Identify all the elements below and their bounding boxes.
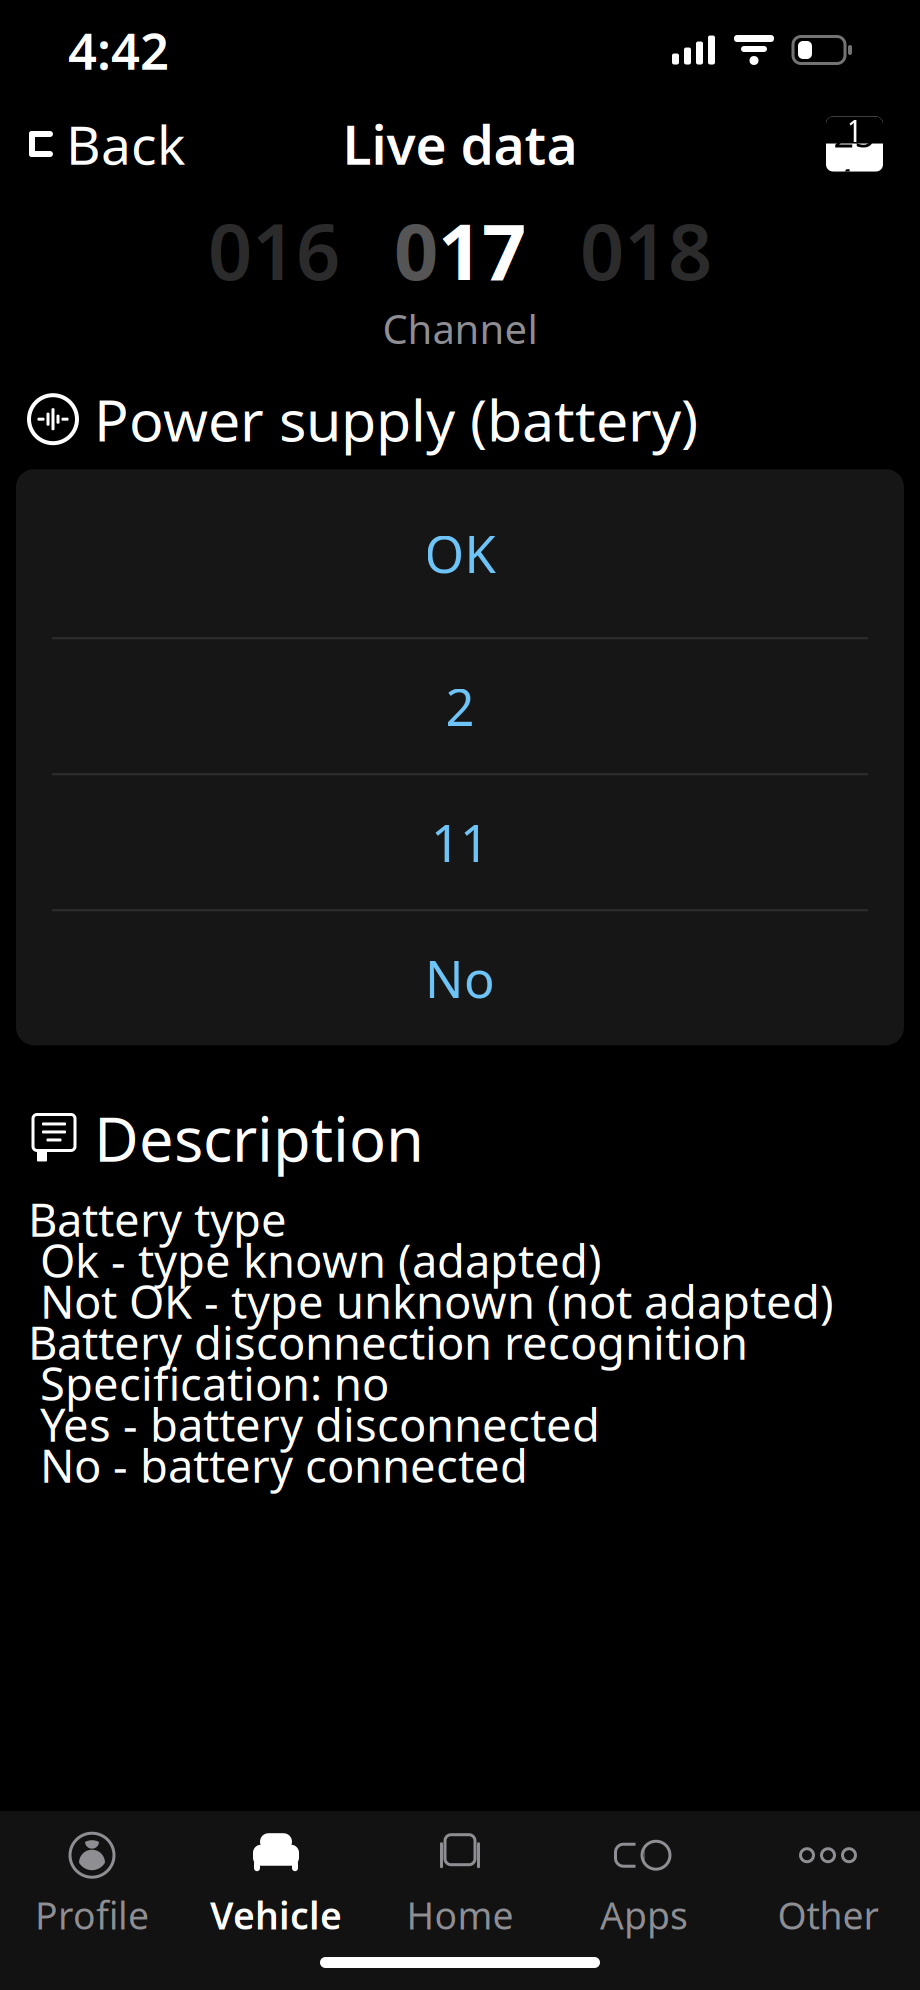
staticText: 018 [580, 199, 712, 301]
button[interactable]: Channel 1 of 254 [826, 116, 910, 171]
staticText: 0 [394, 199, 438, 301]
staticText: 11 [431, 809, 489, 876]
button[interactable]: OK [16, 469, 904, 637]
staticText: Live data [342, 109, 577, 179]
staticText: 2 [445, 673, 474, 740]
staticText: No [425, 945, 495, 1012]
button[interactable]: Vehicle [184, 1831, 368, 1941]
button[interactable]: Back [10, 95, 203, 193]
button[interactable]: Home [368, 1831, 552, 1941]
button[interactable]: Profile [0, 1831, 184, 1941]
staticText: OK [424, 520, 495, 587]
staticText: 016 [208, 199, 340, 301]
staticText: Channel [382, 302, 537, 355]
staticText: Home [406, 1890, 513, 1940]
staticText: 1 [845, 110, 863, 150]
button[interactable]: No [16, 911, 904, 1045]
staticText: Back [66, 109, 185, 179]
staticText: No - battery connected [40, 1435, 528, 1495]
staticText: Apps [600, 1890, 688, 1940]
button[interactable]: Apps [552, 1831, 736, 1941]
button[interactable]: Other [736, 1831, 920, 1941]
staticText: Other [777, 1890, 878, 1940]
staticText: Battery disconnection recognition [28, 1312, 748, 1372]
staticText: Yes - battery disconnected [40, 1394, 600, 1454]
button[interactable]: 0 [367, 210, 553, 290]
staticText: Not OK - type unknown (not adapted) [40, 1271, 834, 1331]
staticText: Ok - type known (adapted) [40, 1230, 602, 1290]
staticText: Power supply (battery) [94, 381, 698, 457]
staticText: 254 [833, 110, 875, 205]
button[interactable]: 016 [181, 210, 367, 290]
staticText: Profile [35, 1890, 149, 1940]
staticText: Description [94, 1097, 424, 1179]
staticText: Vehicle [210, 1890, 342, 1940]
staticText: 17 [438, 199, 526, 301]
staticText: Specification: no [40, 1353, 389, 1413]
staticText: Battery type [28, 1189, 287, 1249]
button[interactable]: 2 [16, 639, 904, 773]
button[interactable]: 11 [16, 775, 904, 909]
button[interactable]: 018 [553, 210, 739, 290]
staticText: 4:42 [68, 16, 169, 84]
